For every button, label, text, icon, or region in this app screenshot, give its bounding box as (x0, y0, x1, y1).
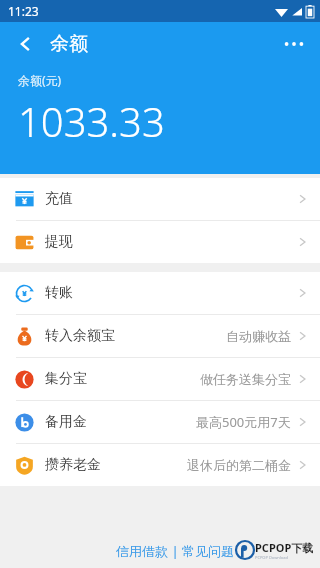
staticText: 转入余额宝 (45, 327, 115, 345)
button[interactable]: 提现 (0, 221, 320, 263)
staticText: PCPOP下载 (255, 540, 314, 555)
button[interactable]: Back (4, 22, 48, 66)
staticText: 余额 (50, 32, 88, 56)
button[interactable]: 充值 (0, 178, 320, 220)
button[interactable]: 备用金 (0, 401, 320, 443)
button[interactable]: More options (272, 22, 316, 66)
staticText: 提现 (45, 233, 73, 251)
staticText: 充值 (45, 190, 73, 208)
staticText: 攒养老金 (45, 456, 101, 474)
button[interactable]: 攒养老金 (0, 444, 320, 486)
staticText: 信用借款 | 常见问题 (116, 542, 234, 560)
staticText: 余额(元) (18, 72, 62, 88)
staticText: 11:23 (8, 3, 39, 19)
staticText: 1033.33 (18, 94, 165, 148)
button[interactable]: 转入余额宝 (0, 315, 320, 357)
staticText: 转账 (45, 284, 73, 302)
button[interactable]: 集分宝 (0, 358, 320, 400)
staticText: 备用金 (45, 413, 87, 431)
staticText: 最高500元用7天 (196, 413, 291, 431)
button[interactable]: 转账 (0, 272, 320, 314)
staticText: 集分宝 (45, 370, 87, 388)
staticText: 退休后的第二桶金 (187, 457, 291, 473)
staticText: PCPOP Download (255, 555, 288, 560)
staticText: 自动赚收益 (226, 328, 291, 344)
staticText: 做任务送集分宝 (200, 371, 291, 387)
